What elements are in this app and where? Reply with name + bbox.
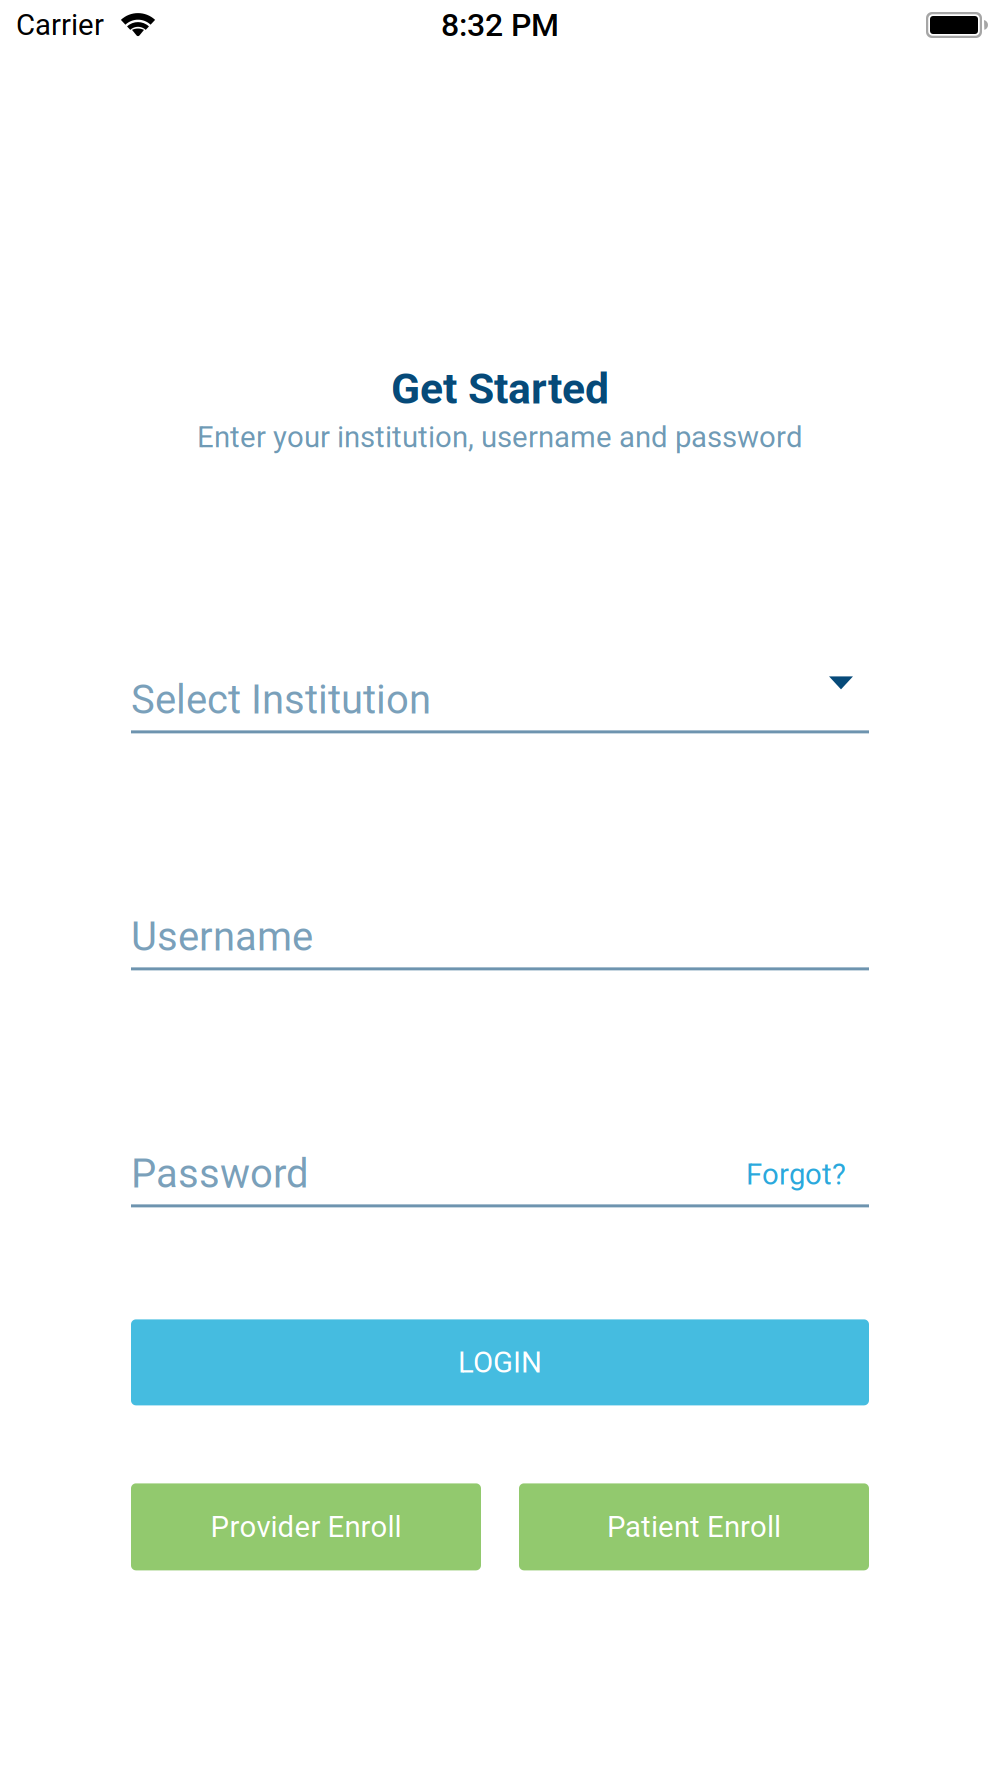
button[interactable]: Select Institution xyxy=(131,676,869,733)
staticText: Get Started xyxy=(391,364,609,414)
staticText: LOGIN xyxy=(458,1345,542,1380)
staticText: Forgot? xyxy=(746,1157,846,1192)
button[interactable]: LOGIN xyxy=(131,1319,869,1405)
button[interactable]: Patient Enroll xyxy=(519,1483,869,1570)
staticText: Password xyxy=(131,1150,309,1197)
staticText: Carrier xyxy=(16,8,104,42)
button[interactable]: Password xyxy=(131,1150,869,1207)
button[interactable]: Choose institution xyxy=(829,676,869,689)
button[interactable]: Username xyxy=(131,913,869,970)
button[interactable]: Provider Enroll xyxy=(131,1483,481,1570)
staticText: Provider Enroll xyxy=(210,1510,401,1544)
button[interactable]: Forgot? xyxy=(746,1150,869,1192)
staticText: Select Institution xyxy=(131,676,431,723)
staticText: Patient Enroll xyxy=(607,1510,781,1544)
staticText: Enter your institution, username and pas… xyxy=(197,420,803,454)
staticText: Username xyxy=(131,913,313,960)
staticText: 8:32 PM xyxy=(441,6,559,44)
